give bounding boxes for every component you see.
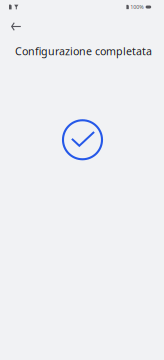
button[interactable]: Back — [5, 16, 28, 37]
staticText: 100% — [130, 3, 143, 11]
staticText: Configurazione completata — [15, 44, 152, 58]
